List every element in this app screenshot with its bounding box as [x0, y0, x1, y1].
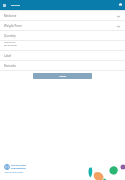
button[interactable]: Remarks	[0, 61, 125, 71]
button[interactable]: Label	[0, 51, 125, 61]
button[interactable]: SUBMIT	[33, 73, 92, 79]
button[interactable]: Open navigation menu	[0, 0, 9, 10]
staticText: Weight/Form	[4, 24, 22, 28]
staticText: Jul 28 2020	[4, 43, 17, 46]
staticText: Western Pacific Region	[4, 171, 24, 173]
staticText: Expense Date	[4, 41, 16, 43]
button[interactable]: Medicine	[0, 11, 125, 21]
button[interactable]: Save expense	[115, 0, 125, 10]
staticText: Remarks	[4, 64, 16, 68]
staticText: World Health	[11, 164, 27, 167]
staticText: SUBMIT	[59, 75, 67, 78]
staticText: Quantity	[4, 34, 16, 38]
button[interactable]: Quantity	[0, 31, 125, 41]
button[interactable]: Weight/Form	[0, 21, 125, 31]
staticText: Label	[4, 54, 12, 58]
staticText: Organization	[11, 167, 26, 170]
staticText: Expense	[11, 4, 21, 7]
staticText: Medicine	[4, 14, 17, 18]
button[interactable]: Expense Date	[0, 41, 125, 51]
